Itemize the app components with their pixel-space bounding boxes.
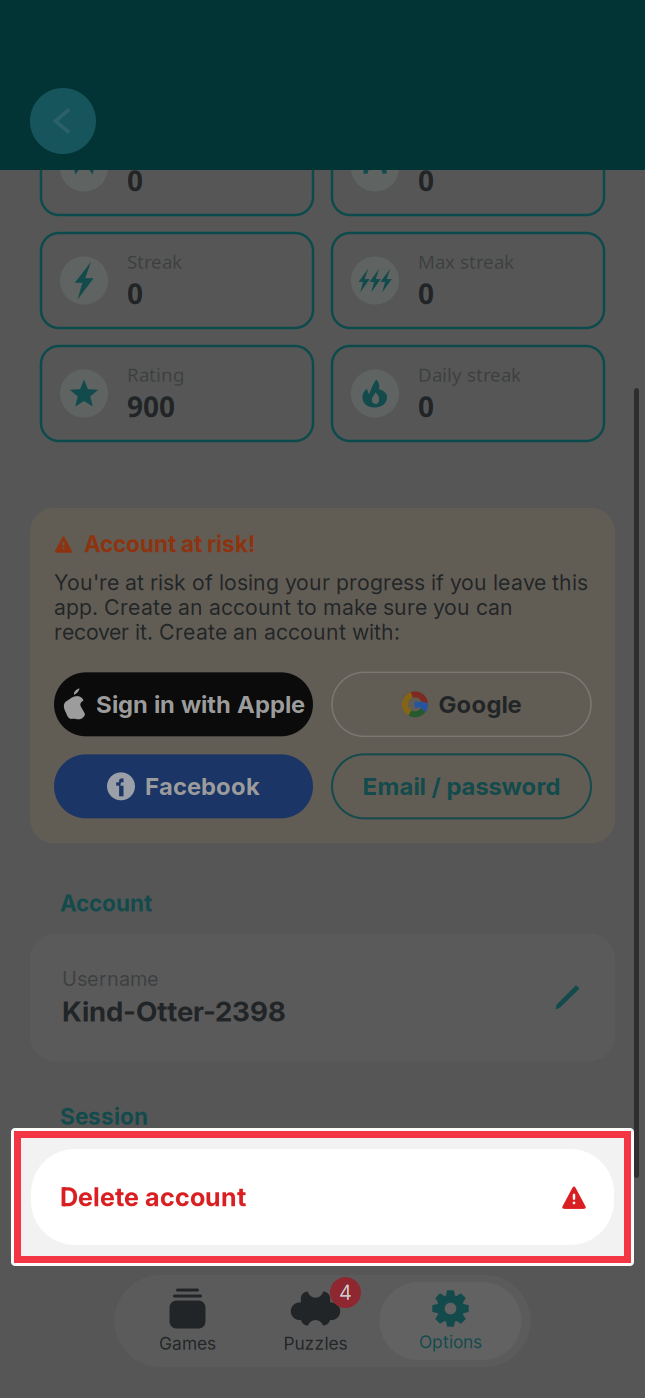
staticText: Max streak (418, 249, 514, 274)
staticText: Puzzles (283, 1333, 347, 1353)
staticText: Sign in with Apple (96, 690, 305, 718)
staticText: 0 (418, 275, 434, 312)
button[interactable]: Delete account (11, 1128, 634, 1266)
button[interactable]: Email / password (332, 754, 591, 818)
staticText: Kind-Otter-2398 (62, 995, 286, 1027)
button[interactable]: 4 (251, 1282, 379, 1360)
staticText: Account (60, 890, 152, 916)
staticText: 900 (127, 388, 175, 425)
staticText: 0 (418, 388, 434, 425)
staticText: Delete account (60, 1182, 246, 1211)
staticText: Rating (127, 362, 184, 387)
staticText: You're at risk of losing your progress i… (54, 570, 588, 644)
button[interactable]: Facebook (54, 754, 313, 818)
button[interactable]: Options (379, 1282, 521, 1360)
button[interactable]: Google (332, 672, 591, 736)
staticText: Facebook (145, 772, 260, 800)
button[interactable]: Username (30, 933, 615, 1061)
staticText: Session (60, 1103, 148, 1129)
staticText: 0 (127, 275, 143, 312)
staticText: 4 (339, 1281, 352, 1304)
staticText: Streak (127, 249, 182, 274)
staticText: 0 (418, 162, 434, 199)
button[interactable]: Games (123, 1282, 251, 1360)
staticText: Google (438, 690, 521, 718)
staticText: Email / password (362, 772, 560, 800)
staticText: Options (419, 1332, 482, 1352)
button[interactable]: Back (30, 88, 96, 154)
staticText: Account at risk! (84, 531, 255, 557)
staticText: Daily streak (418, 362, 521, 387)
staticText: 0 (127, 162, 143, 199)
button[interactable]: Sign in with Apple (54, 672, 313, 736)
staticText: Games (159, 1333, 216, 1353)
staticText: Username (62, 967, 159, 990)
